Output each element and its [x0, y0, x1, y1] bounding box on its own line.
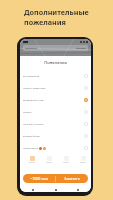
- button[interactable]: Нужно кресло: [20, 142, 91, 154]
- button[interactable]: [62, 156, 70, 163]
- button[interactable]: Без пожеланий: [20, 70, 91, 82]
- staticText: Нужно кресло: [23, 147, 38, 150]
- staticText: Без пожеланий: [23, 75, 40, 78]
- staticText: кондиционер с кем: [23, 99, 44, 102]
- button[interactable]: [23, 45, 88, 51]
- staticText: Тишина: [23, 111, 32, 114]
- button[interactable]: Не курить в салоне: [20, 118, 91, 130]
- button[interactable]: Тишина: [20, 106, 91, 118]
- staticText: Можно с животными: [23, 87, 46, 90]
- staticText: ~7000 сом: [23, 176, 55, 181]
- button[interactable]: Можно с животными: [20, 82, 91, 94]
- button[interactable]: [28, 156, 36, 163]
- staticText: Не курить в салоне: [23, 123, 44, 126]
- staticText: Заказать: [56, 176, 88, 181]
- button[interactable]: [79, 156, 87, 163]
- button[interactable]: ~7000 сом: [23, 174, 88, 183]
- staticText: Дополнительные пожелания: [24, 7, 113, 27]
- staticText: Большой багаж: [23, 135, 40, 138]
- button[interactable]: [45, 156, 53, 163]
- button[interactable]: кондиционер с кем: [20, 94, 91, 106]
- staticText: Пожелания: [20, 60, 91, 65]
- button[interactable]: Большой багаж: [20, 130, 91, 142]
